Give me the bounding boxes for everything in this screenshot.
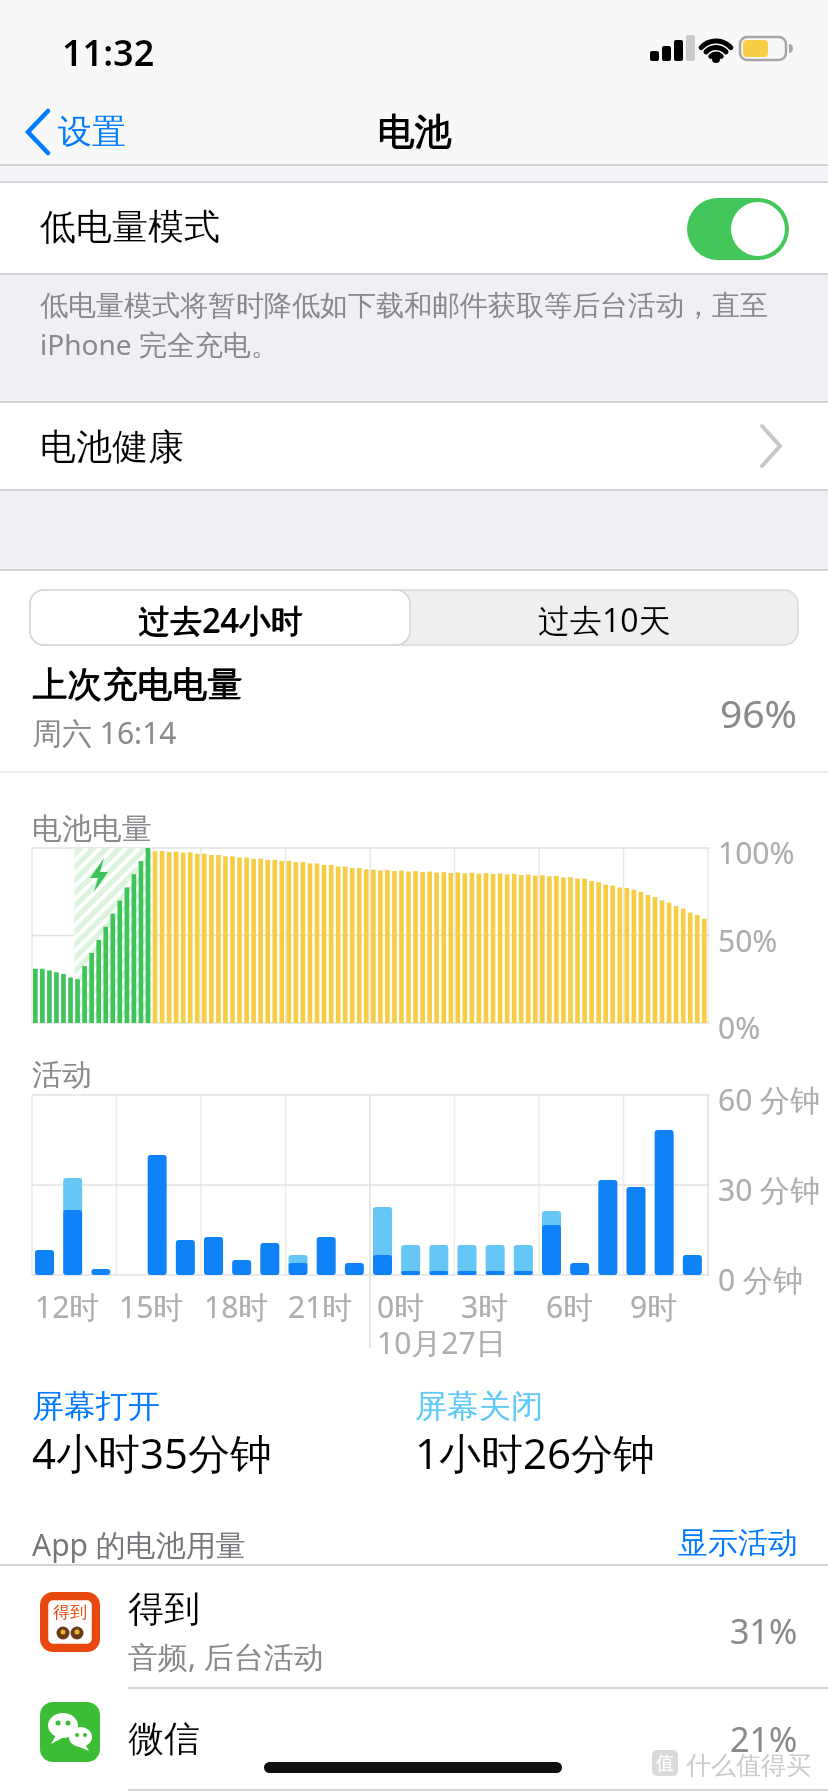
staticText: 设置 xyxy=(58,110,126,153)
staticText: 1小时26分钟 xyxy=(415,1424,656,1481)
staticText: 音频, 后台活动 xyxy=(128,1636,324,1677)
staticText: 得到 xyxy=(128,1586,200,1631)
staticText: 显示活动 xyxy=(678,1524,798,1562)
staticText: 0% xyxy=(718,1007,761,1048)
staticText: 12时 xyxy=(35,1286,100,1327)
staticText: 低电量模式 xyxy=(40,204,220,249)
staticText: 屏幕关闭 xyxy=(415,1386,543,1426)
staticText: 电池电量 xyxy=(32,810,152,848)
staticText: 低电量模式将暂时降低如下载和邮件获取等后台活动，直至 xyxy=(40,288,768,323)
staticText: 上次充电电量 xyxy=(32,662,242,706)
staticText: 21% xyxy=(730,1716,798,1762)
staticText: 4小时35分钟 xyxy=(32,1424,273,1481)
staticText: 60 分钟 xyxy=(718,1079,821,1120)
staticText: 96% xyxy=(720,686,798,739)
staticText: App 的电池用量 xyxy=(32,1524,246,1565)
button[interactable] xyxy=(0,402,828,490)
staticText: 值 xyxy=(656,1752,674,1775)
button[interactable] xyxy=(0,1688,828,1792)
staticText: 10月27日 xyxy=(377,1322,506,1363)
staticText: 30 分钟 xyxy=(718,1169,821,1210)
staticText: 过去24小时 xyxy=(138,598,303,642)
staticText: 3时 xyxy=(461,1286,509,1327)
staticText: 21时 xyxy=(288,1286,353,1327)
staticText: 18时 xyxy=(204,1286,269,1327)
staticText: 9时 xyxy=(630,1286,678,1327)
staticText: 电池健康 xyxy=(40,424,184,469)
staticText: 电池 xyxy=(378,108,452,155)
button[interactable] xyxy=(20,100,140,164)
staticText: 过去24小时 xyxy=(138,599,303,643)
staticText: 电池 xyxy=(377,108,451,155)
staticText: 活动 xyxy=(32,1056,92,1094)
staticText: 过去10天 xyxy=(538,598,671,642)
staticText: 0时 xyxy=(377,1286,425,1327)
staticText: 屏幕打开 xyxy=(32,1386,160,1426)
button[interactable] xyxy=(0,182,828,274)
staticText: 微信 xyxy=(128,1716,200,1761)
staticText: 上次充电电量 xyxy=(32,663,242,707)
button[interactable] xyxy=(30,590,410,645)
staticText: 过去24小时 xyxy=(139,598,304,642)
staticText: 50% xyxy=(718,920,778,961)
staticText: 0 分钟 xyxy=(718,1259,803,1300)
staticText: 6时 xyxy=(546,1286,594,1327)
staticText: 周六 16:14 xyxy=(32,712,177,753)
button[interactable] xyxy=(640,1510,810,1565)
button[interactable] xyxy=(0,1565,828,1688)
staticText: 15时 xyxy=(119,1286,184,1327)
staticText: 电池 xyxy=(377,109,451,156)
staticText: 11:32 xyxy=(62,28,155,77)
staticText: 什么值得买 xyxy=(686,1750,811,1781)
staticText: iPhone 完全充电。 xyxy=(40,325,279,363)
staticText: 上次充电电量 xyxy=(33,662,243,706)
staticText: 31% xyxy=(730,1608,798,1654)
staticText: 100% xyxy=(718,832,795,873)
button[interactable] xyxy=(410,590,798,645)
staticText: 得到 xyxy=(53,1602,87,1623)
